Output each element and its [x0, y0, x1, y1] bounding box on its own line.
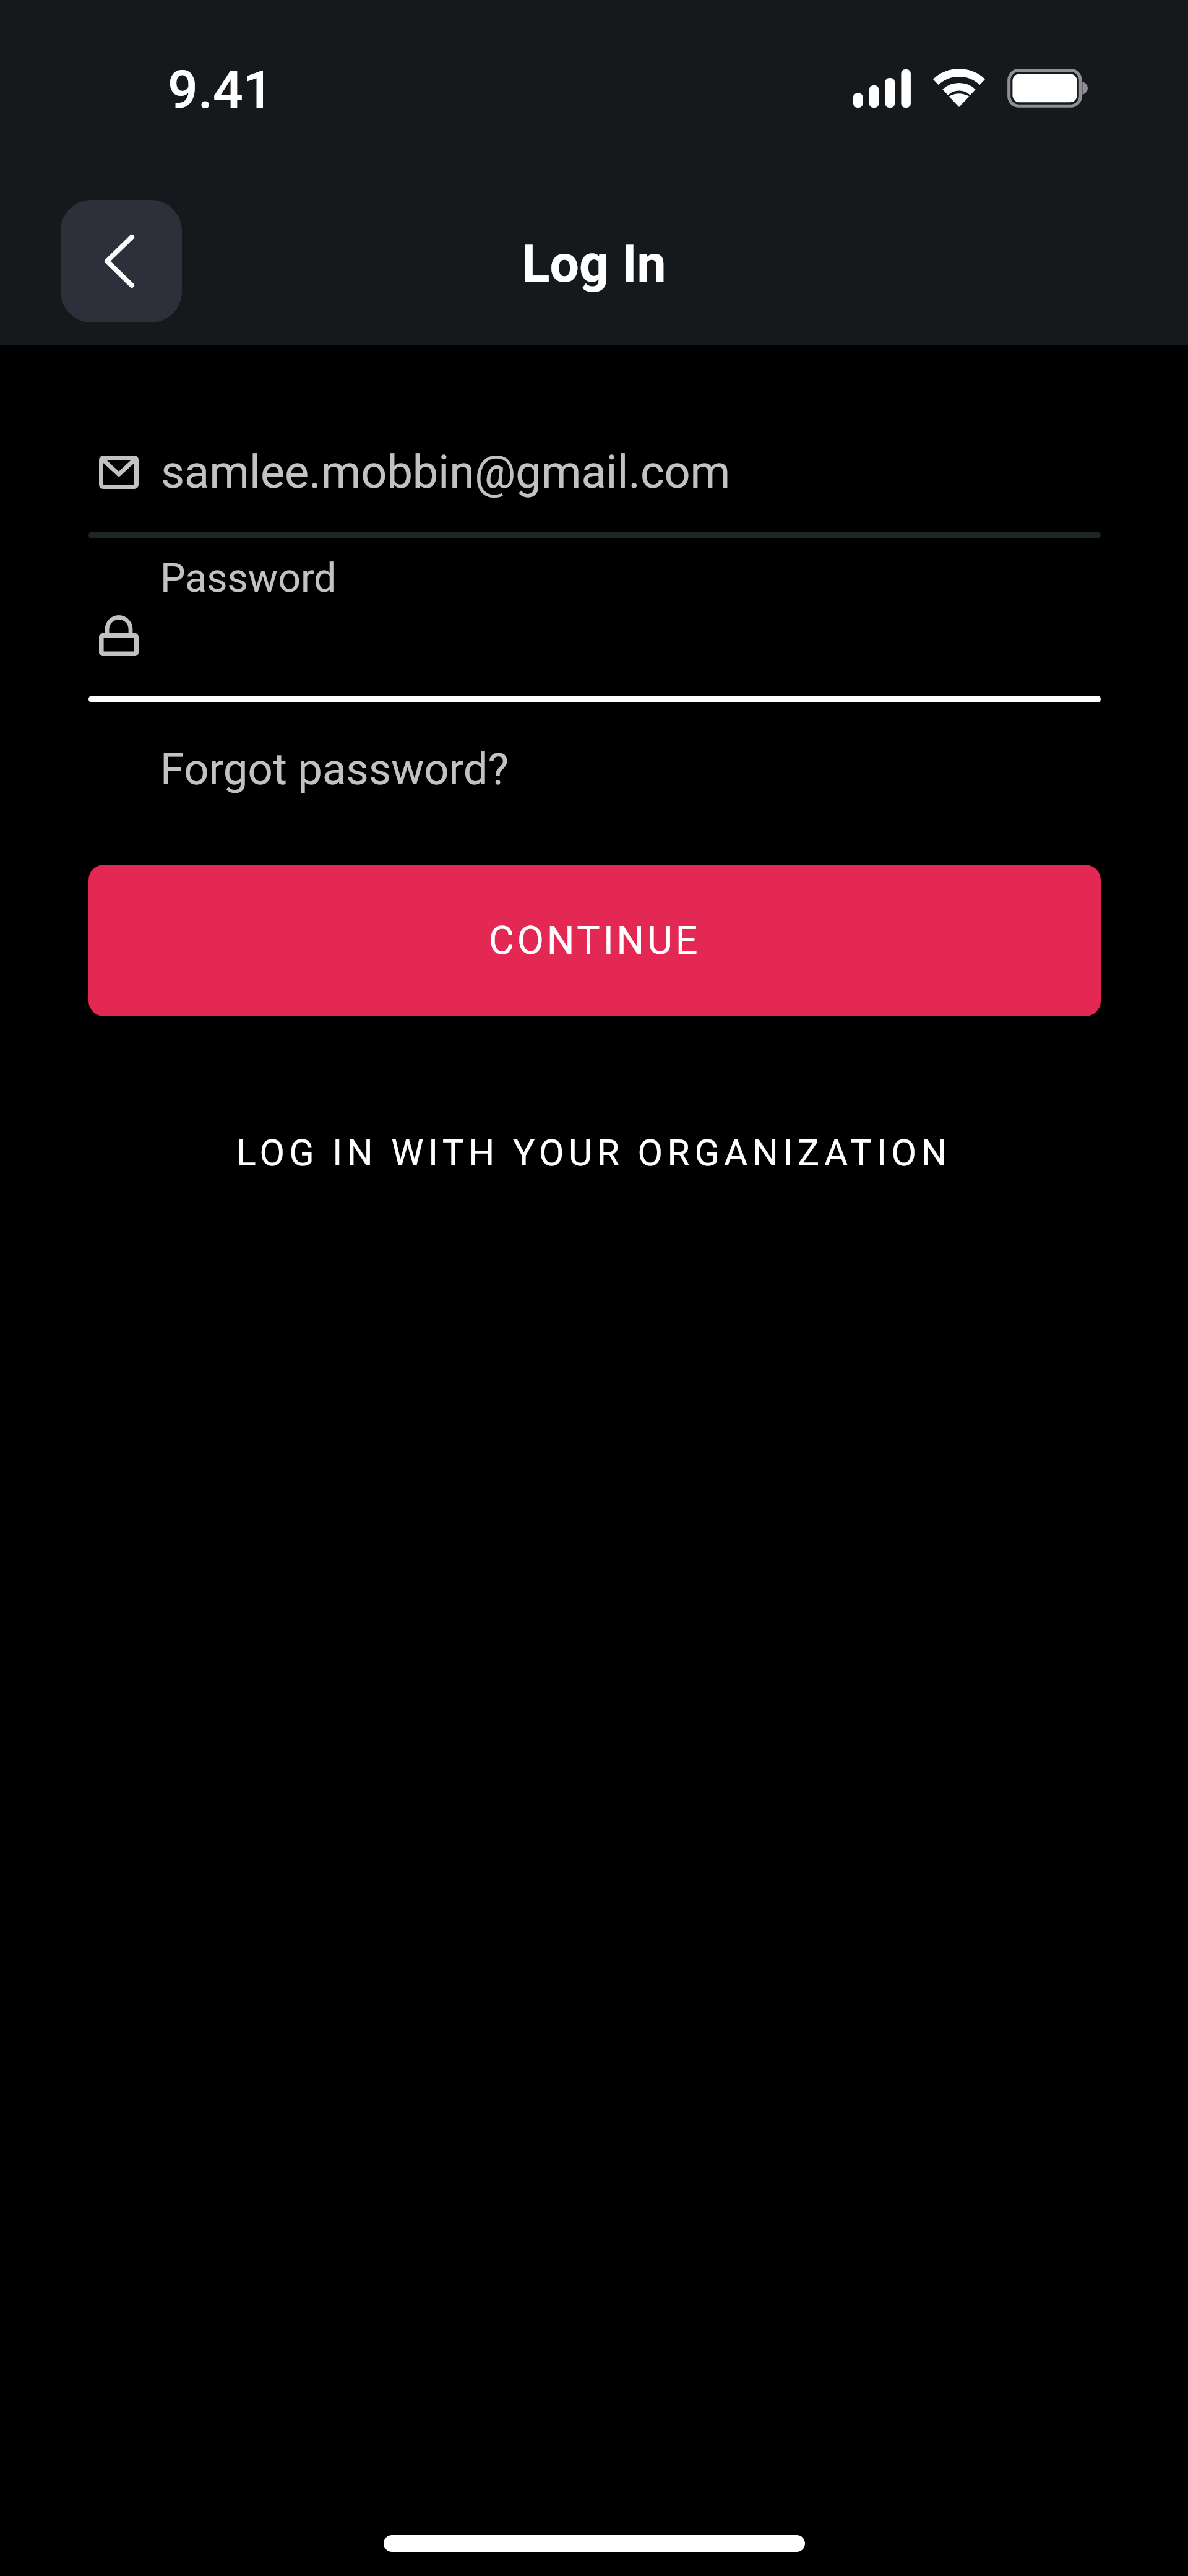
button[interactable]: Email address field	[88, 433, 1101, 538]
staticText: Password	[160, 555, 337, 601]
staticText: samlee.mobbin@gmail.com	[161, 446, 731, 499]
staticText: CONTINUE	[489, 918, 701, 963]
staticText: 9.41	[168, 59, 273, 121]
button[interactable]: Forgot password?	[160, 744, 509, 795]
button[interactable]: LOG IN WITH YOUR ORGANIZATION	[236, 1131, 952, 1174]
staticText: Log In	[522, 233, 666, 294]
button[interactable]: Password field	[88, 545, 1101, 702]
button[interactable]: CONTINUE	[88, 865, 1101, 1016]
button[interactable]: Back	[61, 200, 182, 322]
